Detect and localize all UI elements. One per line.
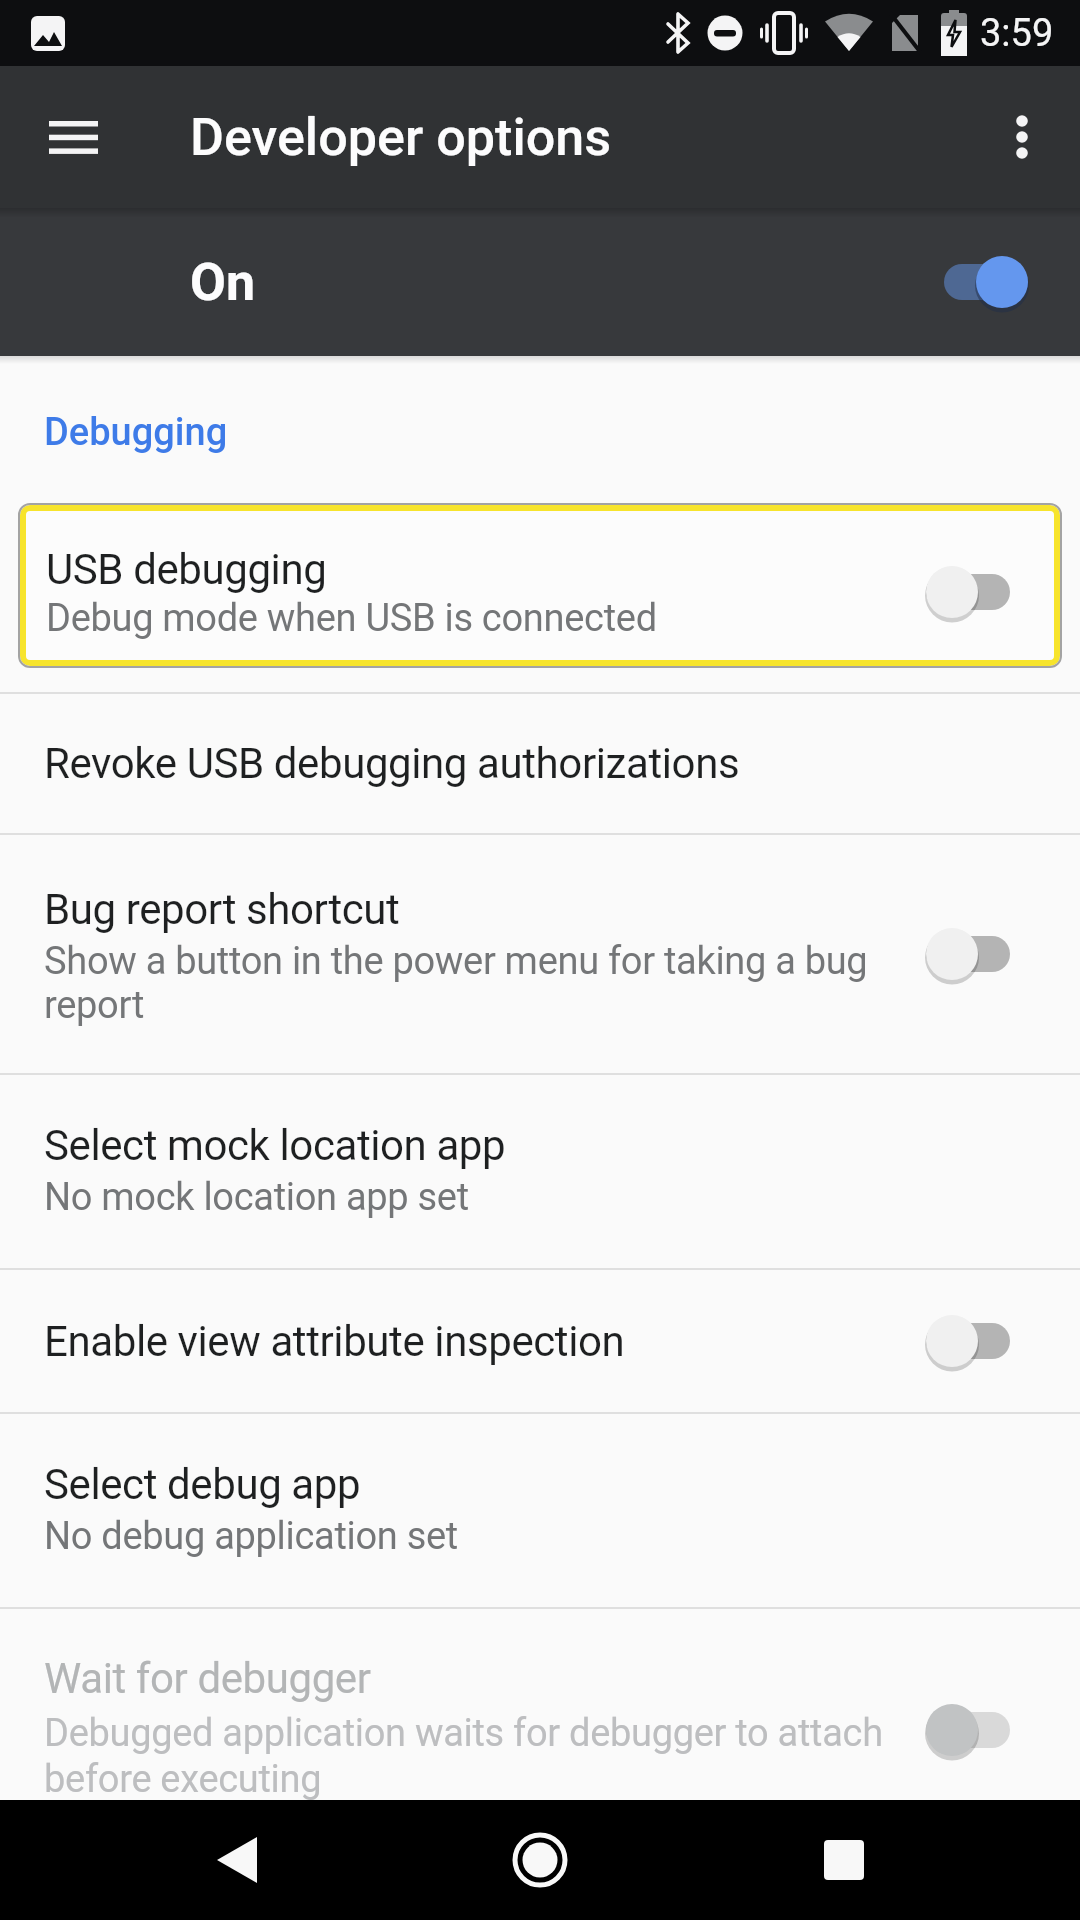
button[interactable]: Select mock location app xyxy=(0,1075,1080,1268)
staticText: Enable view attribute inspection xyxy=(44,1317,625,1366)
staticText: Wait for debugger xyxy=(44,1654,371,1703)
button[interactable] xyxy=(490,1810,590,1910)
staticText: Bug report shortcut xyxy=(44,885,400,934)
button[interactable] xyxy=(187,1810,287,1910)
button[interactable] xyxy=(794,1810,894,1910)
button[interactable]: Bug report shortcut xyxy=(0,835,1080,1073)
button[interactable] xyxy=(34,98,112,176)
button[interactable]: Wait for debugger xyxy=(0,1609,1080,1800)
staticText: On xyxy=(190,252,256,313)
button[interactable]: Revoke USB debugging authorizations xyxy=(0,694,1080,833)
staticText: Developer options xyxy=(190,107,612,168)
staticText: 3:59 xyxy=(980,11,1054,56)
button[interactable]: USB debugging xyxy=(20,505,1060,666)
staticText: USB debugging xyxy=(46,545,327,594)
button[interactable]: On xyxy=(0,208,1080,356)
staticText: Show a button in the power menu for taki… xyxy=(44,939,868,1027)
staticText: No debug application set xyxy=(44,1514,458,1559)
staticText: Debug mode when USB is connected xyxy=(46,596,657,641)
button[interactable] xyxy=(994,98,1050,176)
staticText: Select debug app xyxy=(44,1460,361,1509)
button[interactable]: Enable view attribute inspection xyxy=(0,1270,1080,1412)
staticText: Debugging xyxy=(44,410,228,455)
button[interactable]: Select debug app xyxy=(0,1414,1080,1607)
staticText: Debugged application waits for debugger … xyxy=(44,1711,883,1800)
staticText: Revoke USB debugging authorizations xyxy=(44,739,740,788)
staticText: No mock location app set xyxy=(44,1175,469,1220)
staticText: Select mock location app xyxy=(44,1121,506,1170)
